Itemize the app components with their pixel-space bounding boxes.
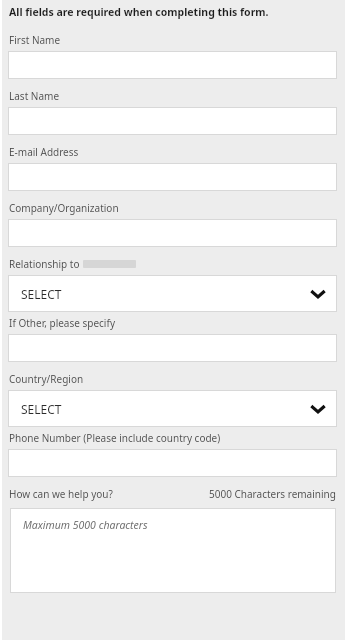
staticText: If Other, please specify: [9, 316, 115, 330]
staticText: Company/Organization: [9, 201, 119, 215]
staticText: All fields are required when completing …: [9, 5, 269, 19]
button[interactable]: SELECT: [8, 275, 337, 312]
staticText: Maximum 5000 characters: [23, 518, 148, 532]
button[interactable]: [8, 219, 337, 247]
button[interactable]: [8, 334, 337, 362]
button[interactable]: [8, 107, 337, 135]
staticText: Relationship to: [9, 257, 83, 271]
staticText: First Name: [9, 33, 61, 47]
button[interactable]: SELECT: [8, 390, 337, 427]
staticText: Phone Number (Please include country cod…: [9, 431, 221, 445]
staticText: How can we help you?: [9, 487, 113, 501]
button[interactable]: [8, 51, 337, 79]
staticText: Last Name: [9, 89, 60, 103]
staticText: 5000 Characters remaining: [209, 487, 336, 501]
button[interactable]: [8, 449, 337, 477]
other: Open dropdown: [310, 401, 326, 417]
button[interactable]: [8, 163, 337, 191]
staticText: Country/Region: [9, 372, 84, 386]
button[interactable]: Maximum 5000 characters: [10, 508, 336, 593]
staticText: SELECT: [21, 286, 62, 302]
staticText: E-mail Address: [9, 145, 79, 159]
staticText: SELECT: [21, 401, 62, 417]
other: Open dropdown: [310, 286, 326, 302]
